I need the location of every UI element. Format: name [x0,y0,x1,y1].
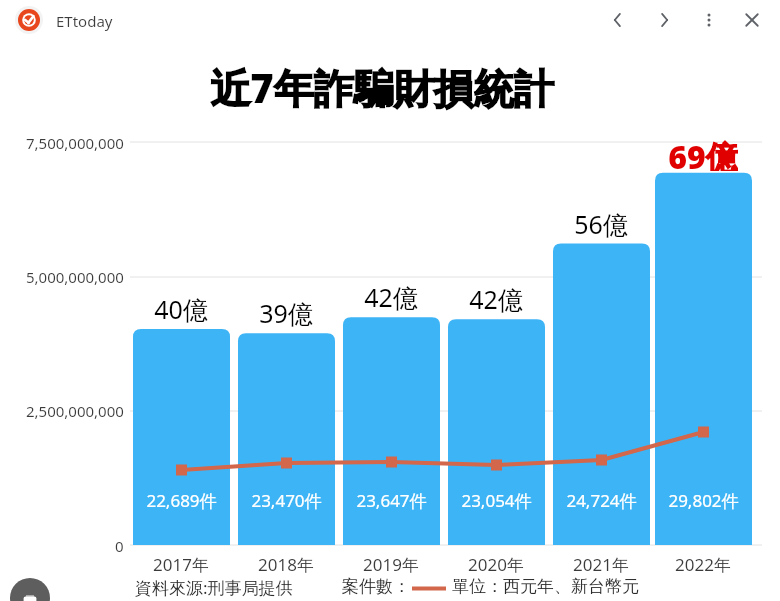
staticText: 單位：西元年、新台幣元 [452,576,639,597]
staticText: 22,689件 [146,489,217,512]
staticText: 2017年 [153,553,209,576]
staticText: 23,470件 [251,489,322,512]
button[interactable]: More options [691,2,727,38]
button[interactable]: Back [600,2,636,38]
staticText: 42億 [364,280,418,314]
staticText: ETtoday [56,11,113,31]
staticText: 29,802件 [668,489,739,512]
staticText: 2022年 [675,553,731,576]
staticText: 23,647件 [356,489,427,512]
staticText: 2018年 [258,553,314,576]
button[interactable]: Close [734,2,770,38]
staticText: 2021年 [573,553,629,576]
staticText: 40億 [154,292,208,326]
staticText: 23,054件 [461,489,532,512]
button[interactable]: Forward [646,2,682,38]
staticText: 2020年 [468,553,524,576]
staticText: 近7年詐騙財損統計 [210,60,554,115]
staticText: 資料來源:刑事局提供 [135,576,293,599]
staticText: 2019年 [363,553,419,576]
button[interactable]: Share [10,578,50,601]
staticText: 42億 [469,282,523,316]
button[interactable]: ETtoday [15,6,43,34]
staticText: 2,500,000,000 [26,401,124,421]
staticText: 24,724件 [566,489,637,512]
staticText: 案件數： [342,576,410,597]
staticText: 5,000,000,000 [26,267,124,287]
staticText: 0 [115,536,124,556]
staticText: 7,500,000,000 [26,133,124,153]
staticText: 39億 [259,296,313,330]
staticText: 56億 [574,207,628,241]
staticText: 69億 [668,135,738,171]
